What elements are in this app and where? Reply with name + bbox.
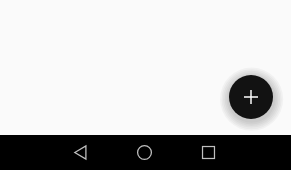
button[interactable]: Recent apps — [176, 135, 240, 170]
button[interactable]: Home — [112, 135, 176, 170]
button[interactable]: Back — [48, 135, 112, 170]
button[interactable]: Add — [229, 75, 273, 119]
